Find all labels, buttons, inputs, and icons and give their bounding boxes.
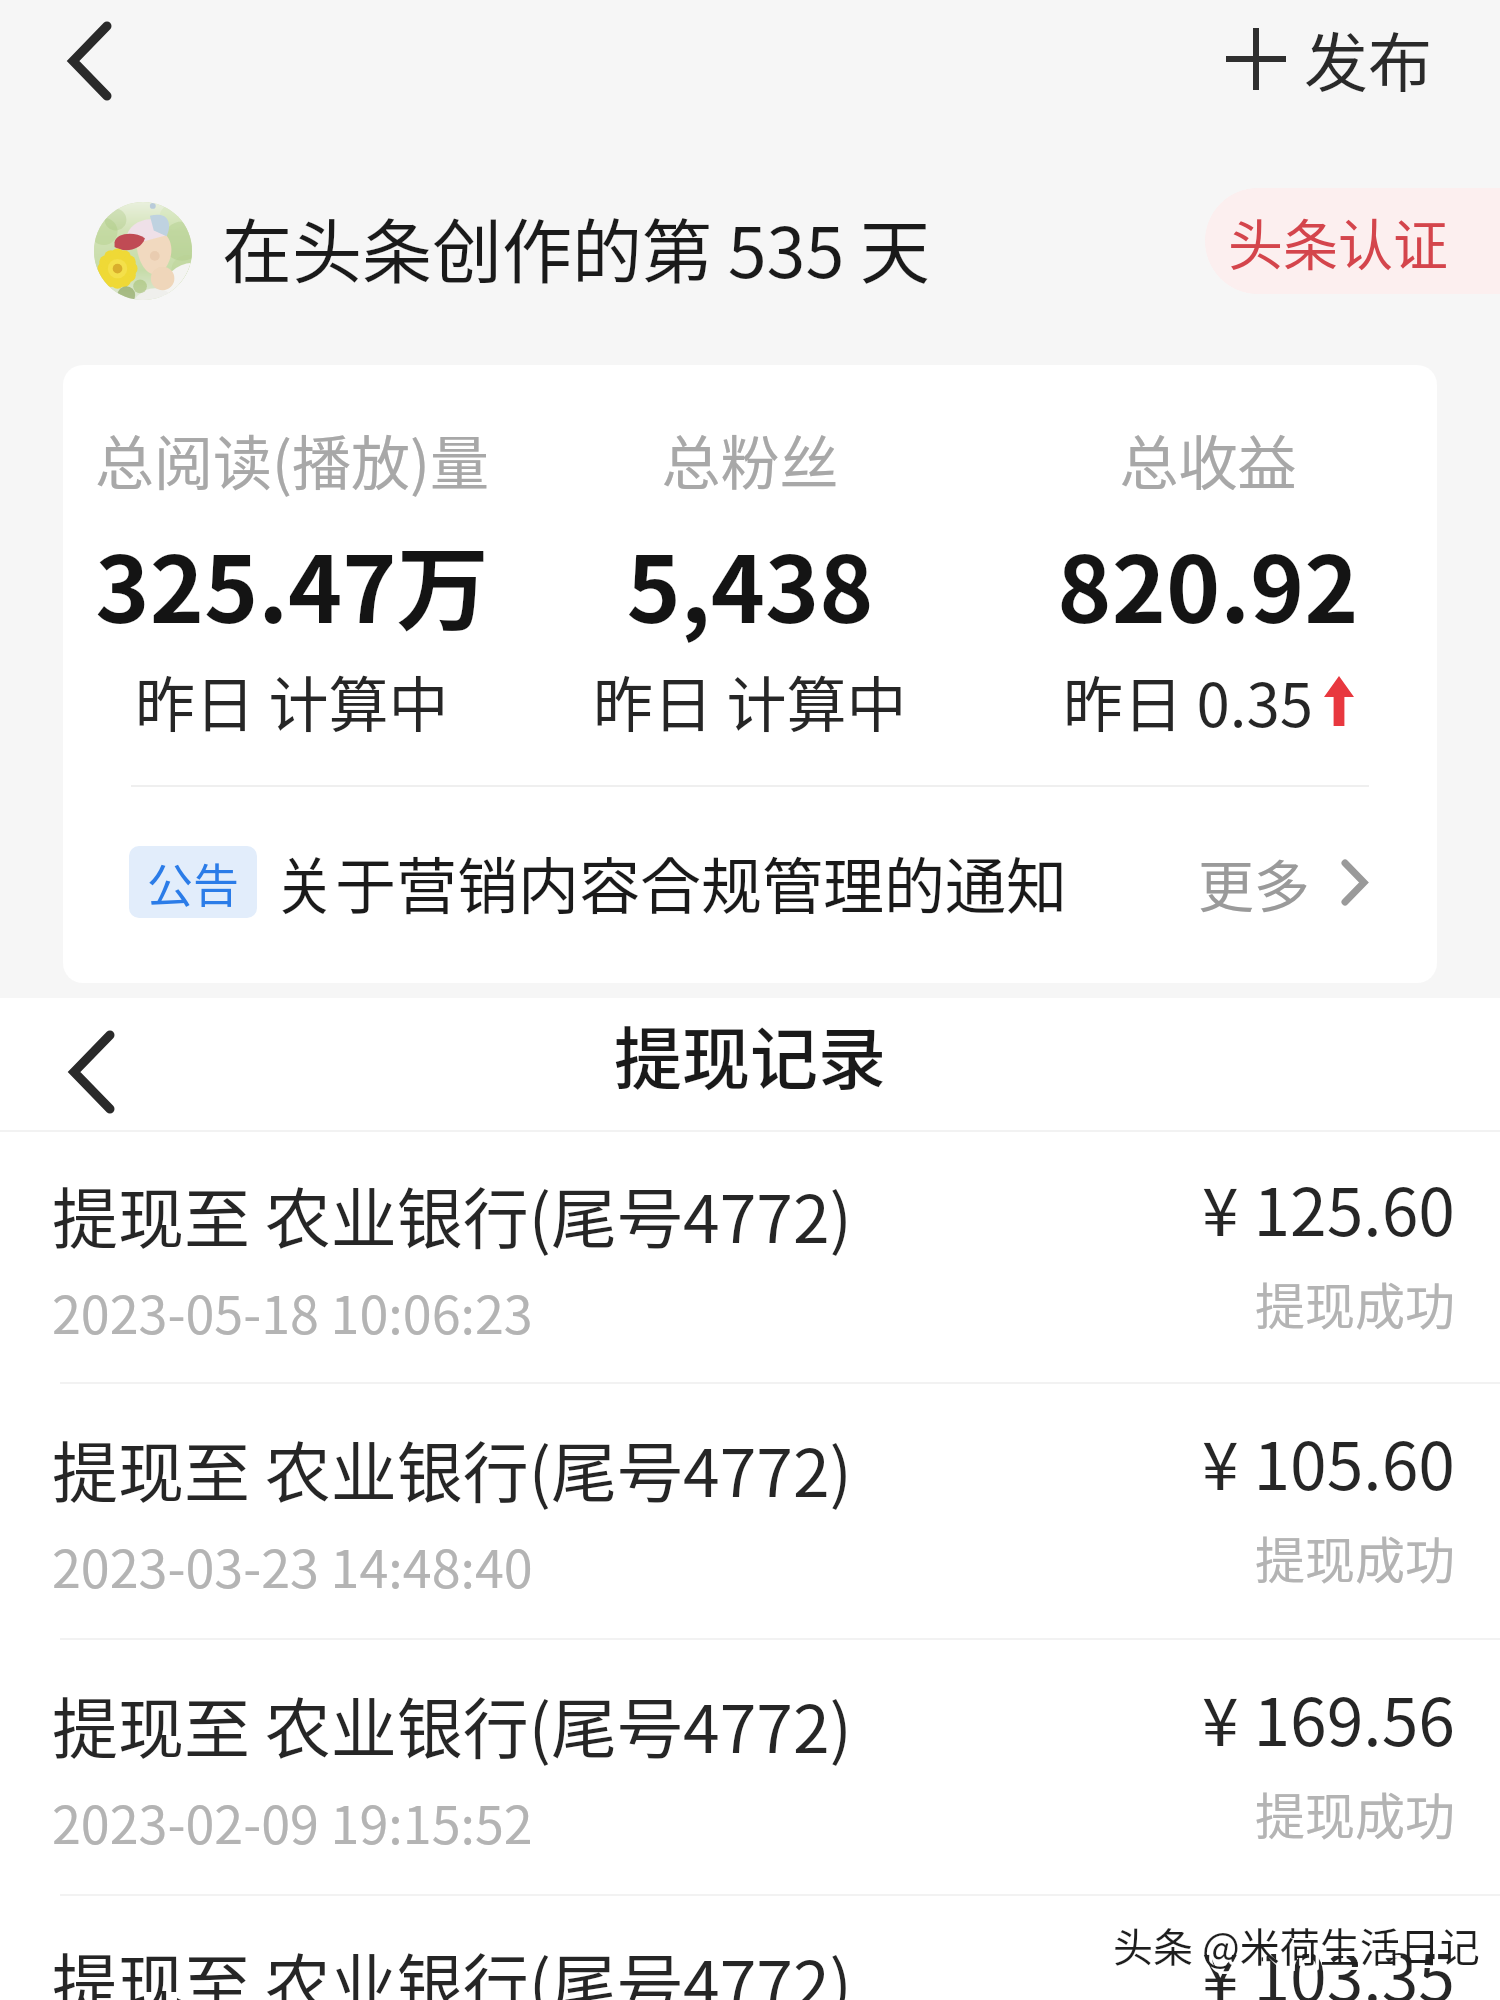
button[interactable]: 总粉丝: [521, 417, 979, 744]
button[interactable]: 在头条创作的第 535 天: [222, 197, 930, 291]
staticText: 头条 @米荷生活日记: [1113, 1916, 1480, 1974]
staticText: 5,438: [626, 516, 874, 649]
staticText: ¥ 105.60: [1202, 1413, 1455, 1509]
button[interactable]: 提现记录: [614, 1005, 887, 1101]
staticText: 提现成功: [1255, 1521, 1455, 1593]
staticText: 总收益: [1119, 417, 1297, 502]
staticText: 在头条创作的第 535 天: [222, 197, 930, 291]
staticText: ¥ 103.35: [1202, 1925, 1455, 2000]
staticText: 提现记录: [614, 1005, 887, 1101]
staticText: 总阅读(播放)量: [95, 417, 489, 502]
staticText: 公告: [147, 849, 239, 916]
staticText: 昨日 计算中: [593, 657, 907, 744]
button[interactable]: 发布: [1226, 12, 1432, 105]
staticText: 2023-03-23 14:48:40: [52, 1528, 533, 1603]
button[interactable]: 总阅读(播放)量: [63, 417, 521, 744]
staticText: ¥ 169.56: [1202, 1669, 1455, 1765]
staticText: 提现至 农业银行(尾号4772): [52, 1932, 852, 2000]
staticText: 325.47万: [95, 516, 489, 649]
staticText: ¥ 125.60: [1202, 1159, 1455, 1255]
staticText: 更多: [1198, 842, 1310, 923]
button[interactable]: 提现至 农业银行(尾号4772): [0, 1896, 1500, 2000]
staticText: 2023-02-09 19:15:52: [52, 1784, 533, 1859]
button[interactable]: 公告: [63, 784, 1437, 980]
staticText: 820.92: [1057, 516, 1359, 649]
staticText: 昨日 计算中: [135, 657, 449, 744]
staticText: 提现至 农业银行(尾号4772): [52, 1166, 852, 1262]
staticText: 提现成功: [1255, 1267, 1455, 1339]
staticText: 提现至 农业银行(尾号4772): [52, 1676, 852, 1772]
staticText: 总粉丝: [661, 417, 839, 502]
staticText: 头条认证: [1228, 201, 1449, 281]
staticText: 头条 @米荷生活日记: [1118, 1921, 1485, 1979]
staticText: 提现成功: [1255, 1777, 1455, 1849]
button[interactable]: 提现至 农业银行(尾号4772): [0, 1384, 1500, 1638]
button[interactable]: Back: [68, 21, 112, 101]
button[interactable]: 总收益: [979, 417, 1437, 744]
staticText: 发布: [1304, 12, 1432, 105]
staticText: 提现至 农业银行(尾号4772): [52, 1420, 852, 1516]
button[interactable]: 提现至 农业银行(尾号4772): [0, 1640, 1500, 1894]
staticText: 2023-05-18 10:06:23: [52, 1274, 533, 1349]
staticText: 昨日 0.35: [1063, 657, 1314, 744]
button[interactable]: Back: [69, 1030, 115, 1114]
staticText: 关于营销内容合规管理的通知: [274, 838, 1068, 926]
button[interactable]: 提现至 农业银行(尾号4772): [0, 1132, 1500, 1382]
button[interactable]: 头条认证: [1205, 188, 1500, 294]
